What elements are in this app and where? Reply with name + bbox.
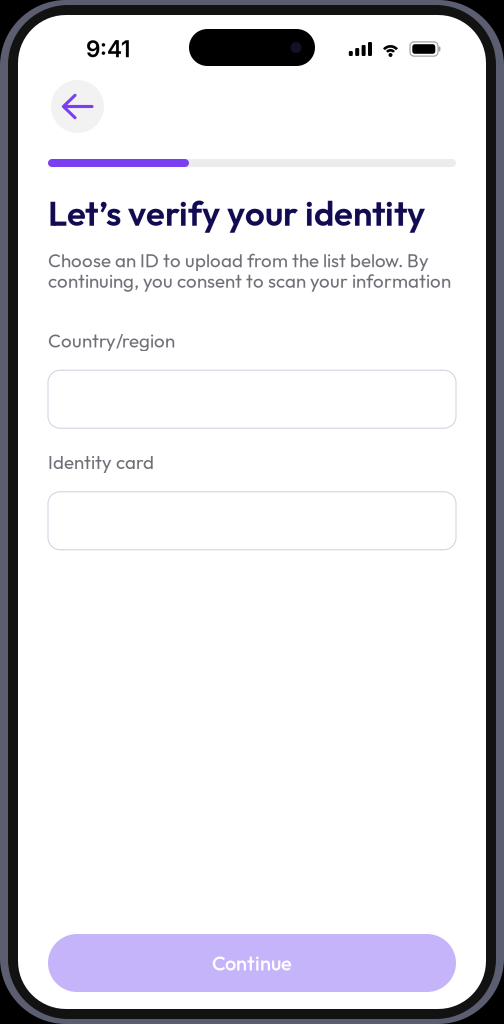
button[interactable]: Back [51,80,104,133]
staticText: 9:41 [86,35,130,63]
button[interactable]: Country/region [48,370,456,428]
staticText: Country/region [48,329,175,352]
staticText: Let’s verify your identity [48,191,425,235]
staticText: Identity card [48,450,154,474]
staticText: Choose an ID to upload from the list bel… [48,249,451,293]
button[interactable]: Identity card [48,492,456,550]
staticText: Continue [212,950,292,976]
button[interactable]: Continue [48,934,456,992]
